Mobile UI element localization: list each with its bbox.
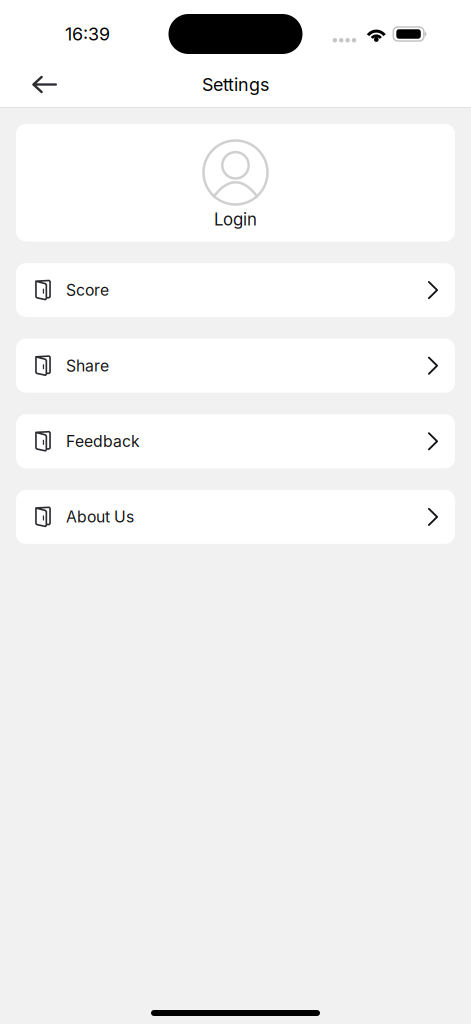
button[interactable]: Back bbox=[0, 61, 89, 107]
staticText: Feedback bbox=[66, 432, 140, 451]
staticText: Login bbox=[214, 209, 257, 230]
staticText: Share bbox=[66, 356, 109, 375]
staticText: About Us bbox=[66, 507, 134, 526]
button[interactable]: Login bbox=[16, 124, 455, 241]
staticText: 16:39 bbox=[65, 23, 110, 45]
staticText: Settings bbox=[202, 74, 269, 95]
button[interactable]: Feedback bbox=[16, 414, 455, 468]
button[interactable]: Score bbox=[16, 263, 455, 317]
button[interactable]: About Us bbox=[16, 490, 455, 544]
staticText: Score bbox=[66, 281, 109, 300]
button[interactable]: Share bbox=[16, 339, 455, 393]
